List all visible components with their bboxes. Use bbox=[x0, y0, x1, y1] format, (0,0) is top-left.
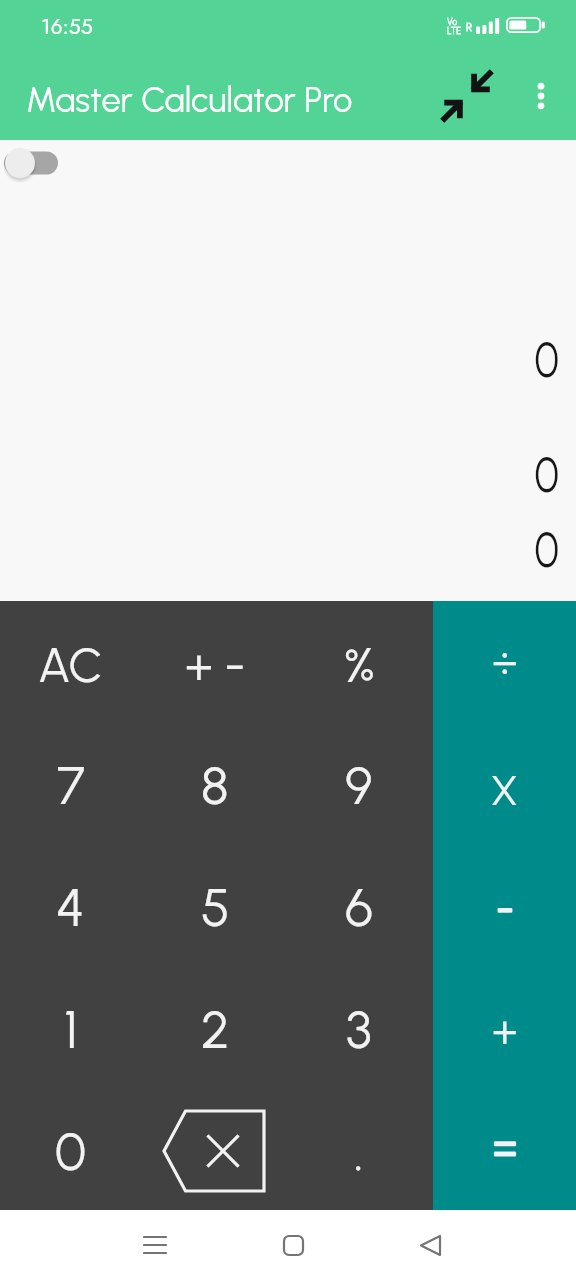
staticText: . bbox=[354, 1121, 364, 1183]
button[interactable]: More options bbox=[521, 76, 561, 116]
button[interactable]: Minus bbox=[433, 844, 576, 966]
button[interactable]: % bbox=[289, 601, 433, 722]
button[interactable]: 7 bbox=[0, 722, 145, 844]
staticText: AC bbox=[38, 636, 103, 694]
button[interactable]: Collapse bbox=[442, 71, 492, 121]
staticText: 6 bbox=[345, 877, 374, 939]
button[interactable]: 4 bbox=[0, 844, 145, 966]
button[interactable]: 6 bbox=[289, 844, 433, 966]
staticText: 5 bbox=[201, 877, 230, 939]
button[interactable]: ÷ bbox=[433, 601, 576, 722]
staticText: 16:55 bbox=[41, 12, 93, 42]
staticText: Master Calculator Pro bbox=[26, 79, 353, 120]
staticText: 8 bbox=[201, 755, 229, 817]
staticText: X bbox=[491, 767, 518, 815]
button[interactable]: X bbox=[433, 722, 576, 844]
button[interactable]: Recent apps bbox=[125, 1215, 185, 1275]
button[interactable]: 5 bbox=[145, 844, 289, 966]
button[interactable]: + - bbox=[145, 601, 289, 722]
staticText: ÷ bbox=[492, 635, 518, 688]
staticText: R bbox=[466, 21, 473, 34]
staticText: 0 bbox=[534, 444, 559, 504]
button[interactable]: + bbox=[433, 966, 576, 1088]
staticText: 0 bbox=[55, 1121, 86, 1183]
button[interactable]: Equals bbox=[433, 1088, 576, 1210]
button[interactable]: 0 bbox=[0, 1088, 145, 1210]
staticText: 9 bbox=[345, 755, 373, 817]
button[interactable]: . bbox=[289, 1088, 433, 1210]
staticText: 3 bbox=[346, 999, 372, 1061]
button[interactable]: 3 bbox=[289, 966, 433, 1088]
button[interactable]: 1 bbox=[0, 966, 145, 1088]
button[interactable]: Backspace bbox=[145, 1088, 289, 1210]
button[interactable]: 8 bbox=[145, 722, 289, 844]
staticText: 2 bbox=[201, 999, 230, 1061]
button[interactable]: AC bbox=[0, 601, 145, 722]
staticText: 0 bbox=[534, 329, 559, 389]
button[interactable]: Back bbox=[400, 1215, 460, 1275]
staticText: 1 bbox=[64, 999, 78, 1061]
button[interactable]: 2 bbox=[145, 966, 289, 1088]
staticText: 0 bbox=[534, 519, 559, 579]
staticText: 4 bbox=[56, 877, 85, 939]
button[interactable]: 9 bbox=[289, 722, 433, 844]
staticText: 7 bbox=[57, 755, 85, 817]
button[interactable]: Toggle scientific mode bbox=[0, 143, 64, 179]
staticText: Vo LTE bbox=[447, 16, 461, 36]
staticText: + - bbox=[185, 636, 246, 694]
staticText: + bbox=[492, 1004, 518, 1057]
button[interactable]: Home bbox=[263, 1215, 323, 1275]
staticText: % bbox=[344, 636, 375, 694]
